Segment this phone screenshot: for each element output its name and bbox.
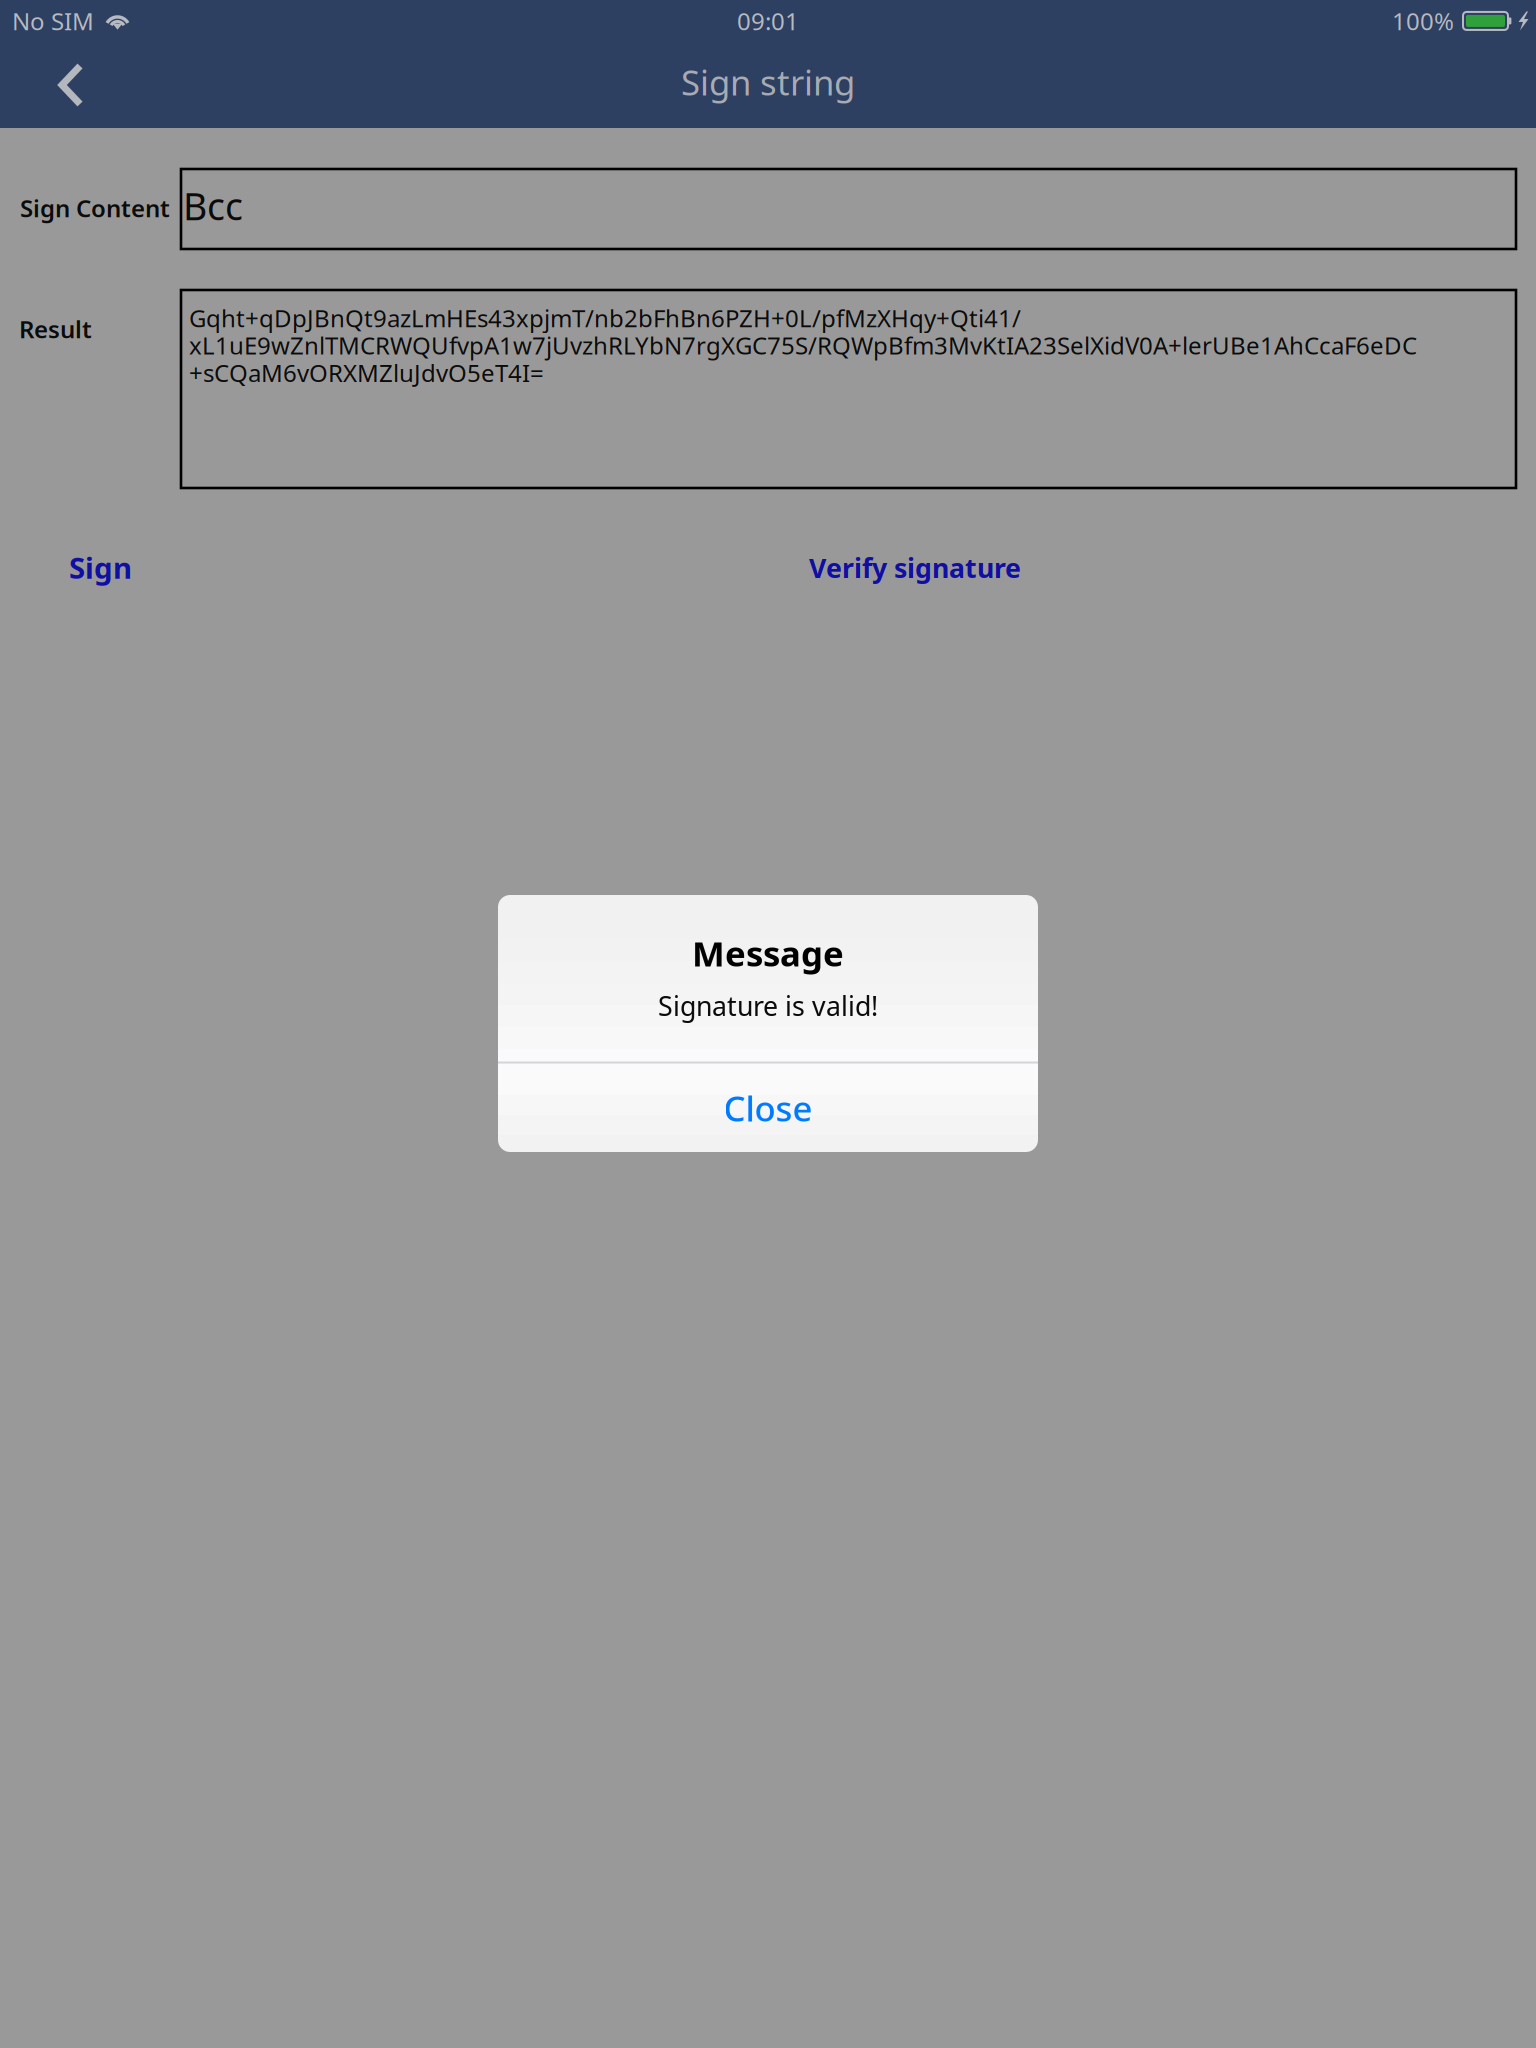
staticText: Close — [723, 1085, 812, 1131]
staticText: Sign — [69, 548, 132, 587]
button[interactable]: Sign Content — [181, 169, 1516, 249]
staticText: Sign string — [681, 59, 855, 105]
staticText: Message — [692, 930, 844, 976]
staticText: No SIM — [12, 5, 94, 37]
staticText: xL1uE9wZnlTMCRWQUfvpA1w7jUvzhRLYbN7rgXGC… — [189, 329, 1417, 361]
button[interactable]: Verify signature — [797, 540, 1033, 595]
staticText: Verify signature — [809, 550, 1021, 585]
staticText: Result — [19, 313, 92, 345]
staticText: Gqht+qDpJBnQt9azLmHEs43xpjmT/nb2bFhBn6PZ… — [189, 302, 1021, 334]
staticText: 100% — [1392, 5, 1454, 37]
button[interactable]: Sign — [57, 538, 144, 597]
staticText: +sCQaM6vORXMZluJdvO5eT4I= — [189, 357, 544, 389]
button[interactable]: Close — [498, 1064, 1038, 1152]
button[interactable]: Result — [181, 290, 1516, 488]
staticText: Bcc — [183, 181, 243, 231]
staticText: 09:01 — [737, 5, 799, 37]
button[interactable]: Back — [30, 41, 112, 129]
staticText: Signature is valid! — [658, 988, 878, 1023]
staticText: Sign Content — [20, 192, 170, 224]
